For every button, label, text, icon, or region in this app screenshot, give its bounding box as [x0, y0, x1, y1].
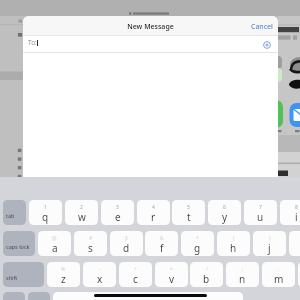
staticText: 6	[223, 204, 226, 211]
staticText: v	[169, 272, 175, 286]
button[interactable]: Add contact	[263, 41, 271, 49]
button[interactable]: %	[47, 262, 80, 287]
button[interactable]: 7	[244, 200, 277, 225]
button[interactable]: -	[83, 262, 116, 287]
staticText: @	[52, 235, 57, 242]
staticText: q	[42, 210, 49, 224]
staticText: New Message	[23, 22, 278, 31]
staticText: -	[99, 266, 101, 273]
button[interactable]: *	[181, 231, 214, 256]
button[interactable]: ;	[226, 262, 259, 287]
staticText: /	[206, 266, 208, 273]
staticText: =	[170, 266, 173, 273]
staticText: Cancel	[251, 22, 273, 32]
button[interactable]: )	[253, 231, 286, 256]
staticText: *	[196, 235, 199, 242]
staticText: 3	[116, 204, 119, 211]
button[interactable]: 3	[101, 200, 134, 225]
staticText: )	[269, 235, 271, 242]
staticText: $	[125, 235, 128, 242]
staticText: s	[88, 241, 93, 255]
button[interactable]: Space	[53, 292, 243, 300]
staticText: w	[78, 210, 86, 224]
button[interactable]	[298, 262, 300, 287]
button[interactable]: Globe	[3, 292, 25, 300]
button[interactable]: $	[110, 231, 143, 256]
staticText: #	[89, 235, 93, 242]
button[interactable]: tab	[3, 200, 26, 225]
staticText: To:	[28, 38, 37, 47]
staticText: (	[233, 235, 235, 242]
staticText: d	[123, 241, 130, 255]
staticText: shift	[6, 274, 18, 281]
staticText: m	[274, 272, 284, 286]
staticText: +	[134, 266, 137, 273]
staticText: 1	[44, 204, 47, 211]
staticText: caps lock	[6, 243, 30, 250]
button[interactable]: caps lock	[3, 231, 35, 256]
button[interactable]: @	[38, 231, 71, 256]
staticText: g	[194, 241, 201, 255]
staticText: e	[115, 210, 121, 224]
staticText: t	[187, 210, 191, 224]
staticText: 4	[152, 204, 155, 211]
staticText: ;	[242, 266, 244, 273]
staticText: r	[151, 210, 156, 224]
button[interactable]: /	[190, 262, 223, 287]
staticText: %	[61, 266, 66, 273]
button[interactable]: 4	[137, 200, 170, 225]
staticText: 5	[187, 204, 190, 211]
staticText: i	[295, 210, 298, 224]
button[interactable]: =	[155, 262, 188, 287]
staticText: u	[257, 210, 264, 224]
button[interactable]: #	[74, 231, 107, 256]
staticText: 8	[295, 204, 298, 211]
button[interactable]: +	[119, 262, 152, 287]
staticText: x	[97, 272, 103, 286]
staticText: :	[278, 266, 280, 273]
staticText: z	[61, 272, 66, 286]
button[interactable]: 8	[280, 200, 300, 225]
staticText: h	[230, 241, 237, 255]
staticText: &	[160, 235, 164, 242]
staticText: c	[133, 272, 138, 286]
staticText: 2	[80, 204, 83, 211]
button[interactable]: shift	[3, 262, 44, 287]
button[interactable]: :	[262, 262, 295, 287]
button[interactable]: Cancel	[246, 18, 278, 36]
staticText: f	[160, 241, 164, 255]
button[interactable]: Emoji	[28, 292, 50, 300]
staticText: y	[222, 210, 228, 224]
button[interactable]: (	[217, 231, 250, 256]
staticText: a	[52, 241, 58, 255]
staticText: tab	[6, 212, 15, 219]
button[interactable]: 6	[208, 200, 241, 225]
button[interactable]: 2	[65, 200, 98, 225]
button[interactable]: 1	[29, 200, 62, 225]
staticText: j	[268, 241, 271, 255]
staticText: 7	[259, 204, 262, 211]
staticText: b	[203, 272, 210, 286]
button[interactable]: '	[289, 231, 300, 256]
button[interactable]: 5	[172, 200, 205, 225]
button[interactable]: &	[145, 231, 178, 256]
staticText: n	[239, 272, 246, 286]
